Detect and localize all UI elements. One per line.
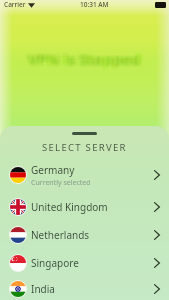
- staticText: VPN is Stopped: [28, 47, 141, 67]
- staticText: VPN is Stopped: [27, 47, 140, 67]
- staticText: VPN is Stopped: [26, 48, 139, 68]
- button[interactable]: India: [0, 277, 169, 300]
- staticText: VPN is Stopped: [25, 51, 138, 71]
- staticText: VPN is Stopped: [25, 48, 138, 68]
- staticText: VPN is Stopped: [27, 48, 140, 68]
- staticText: VPN is Stopped: [26, 51, 139, 71]
- staticText: VPN is Stopped: [29, 50, 142, 70]
- staticText: VPN is Stopped: [30, 50, 143, 70]
- staticText: VPN is Stopped: [31, 51, 144, 71]
- staticText: VPN is Stopped: [29, 47, 142, 67]
- staticText: VPN is Stopped: [26, 47, 139, 67]
- staticText: Netherlands: [31, 228, 90, 242]
- staticText: VPN is Stopped: [25, 49, 138, 69]
- staticText: VPN is Stopped: [31, 47, 144, 67]
- staticText: 10:31 AM: [80, 0, 109, 9]
- staticText: VPN is Stopped: [25, 50, 138, 70]
- staticText: United Kingdom: [31, 200, 108, 214]
- staticText: VPN is Stopped: [31, 48, 144, 68]
- staticText: VPN is Stopped: [31, 50, 144, 70]
- staticText: VPN is Stopped: [29, 48, 142, 68]
- staticText: VPN is Stopped: [28, 48, 141, 68]
- staticText: VPN is Stopped: [29, 49, 142, 69]
- staticText: VPN is Stopped: [31, 49, 144, 69]
- staticText: VPN is Stopped: [30, 47, 143, 67]
- staticText: Germany: [31, 163, 75, 177]
- staticText: VPN is Stopped: [29, 51, 142, 71]
- staticText: VPN is Stopped: [26, 49, 139, 69]
- staticText: VPN is Stopped: [28, 51, 141, 71]
- button[interactable]: United Kingdom: [0, 193, 169, 221]
- staticText: VPN is Stopped: [30, 51, 143, 71]
- staticText: India: [31, 282, 55, 296]
- staticText: Carrier: [4, 0, 26, 9]
- button[interactable]: Netherlands: [0, 221, 169, 249]
- staticText: VPN is Stopped: [28, 49, 141, 69]
- staticText: VPN is Stopped: [27, 50, 140, 70]
- staticText: VPN is Stopped: [30, 49, 143, 69]
- button[interactable]: Singapore: [0, 249, 169, 277]
- staticText: VPN is Stopped: [27, 49, 140, 69]
- staticText: Singapore: [31, 256, 79, 270]
- staticText: VPN is Stopped: [25, 47, 138, 67]
- button[interactable]: Germany: [0, 157, 169, 193]
- staticText: VPN is Stopped: [27, 51, 140, 71]
- staticText: VPN is Stopped: [26, 50, 139, 70]
- staticText: VPN is Stopped: [28, 50, 141, 70]
- staticText: Currently selected: [31, 178, 91, 188]
- staticText: SELECT SERVER: [42, 141, 127, 154]
- staticText: VPN is Stopped: [30, 48, 143, 68]
